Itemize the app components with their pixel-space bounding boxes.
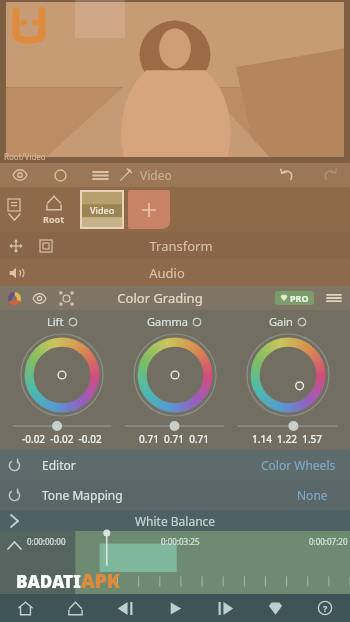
button[interactable]: Previous frame [100, 594, 150, 622]
button[interactable]: Upgrade to Pro [250, 594, 300, 622]
button[interactable]: Audio [0, 259, 350, 286]
staticText: Video [90, 204, 115, 216]
button[interactable]: Lift slider [6, 420, 118, 432]
staticText: Editor [42, 457, 76, 473]
staticText: Tone Mapping [42, 487, 123, 503]
staticText: White Balance [14, 513, 336, 529]
staticText: -0.02 -0.02 -0.02 [22, 432, 102, 446]
staticText: ? [323, 602, 328, 614]
button[interactable]: Layers menu [80, 163, 120, 187]
button[interactable]: Color grading menu [324, 288, 344, 308]
staticText: 0:00:03:25 [161, 536, 200, 547]
button[interactable]: Add layer [128, 190, 170, 229]
button[interactable]: Shape [40, 163, 80, 187]
staticText: Color Grading [59, 289, 261, 307]
staticText: Gamma [147, 314, 188, 329]
button[interactable]: Video [82, 192, 122, 227]
button[interactable]: Home [0, 594, 50, 622]
staticText: 0:00:00:00 [27, 536, 66, 547]
button[interactable]: Gain slider [231, 420, 344, 432]
button[interactable]: Lift color wheel [19, 332, 105, 418]
staticText: None [297, 487, 328, 503]
button[interactable]: Play [150, 594, 200, 622]
button[interactable]: Collapse timeline [4, 535, 24, 555]
button[interactable]: PRO [280, 292, 309, 304]
button[interactable]: Collapse layers [0, 187, 28, 232]
button[interactable]: Gamma slider [118, 420, 231, 432]
staticText: APK [81, 568, 120, 594]
button[interactable]: Tone Mapping [0, 480, 350, 510]
staticText: 1.14 1.22 1.57 [252, 432, 323, 446]
button[interactable]: Root [28, 187, 80, 232]
staticText: Transform [36, 237, 326, 255]
button[interactable]: Transform [0, 232, 350, 259]
button[interactable]: Toggle visibility [0, 163, 40, 187]
button[interactable]: Editor [0, 450, 350, 480]
button[interactable]: Help [300, 594, 350, 622]
button[interactable]: Gamma color wheel [132, 332, 218, 418]
button[interactable]: Color Grading [0, 286, 350, 310]
button[interactable]: Export [50, 594, 100, 622]
button[interactable]: Gain color wheel [245, 332, 331, 418]
button[interactable]: Next frame [200, 594, 250, 622]
staticText: 0:00:07:20 [309, 536, 348, 547]
staticText: Color Wheels [261, 457, 336, 473]
staticText: 0.71 0.71 0.71 [139, 432, 210, 446]
staticText: BADATI [16, 570, 81, 593]
staticText: Root [43, 213, 65, 225]
staticText: Root/Video [4, 151, 46, 162]
staticText: Gain [269, 314, 293, 329]
staticText: PRO [290, 292, 309, 304]
button[interactable]: Undo [266, 163, 308, 187]
button[interactable]: Video [120, 163, 266, 187]
button[interactable]: White Balance [0, 510, 350, 531]
staticText: Video [140, 167, 172, 183]
staticText: Lift [47, 314, 64, 329]
button[interactable]: Redo [308, 163, 350, 187]
staticText: Audio [8, 264, 326, 282]
